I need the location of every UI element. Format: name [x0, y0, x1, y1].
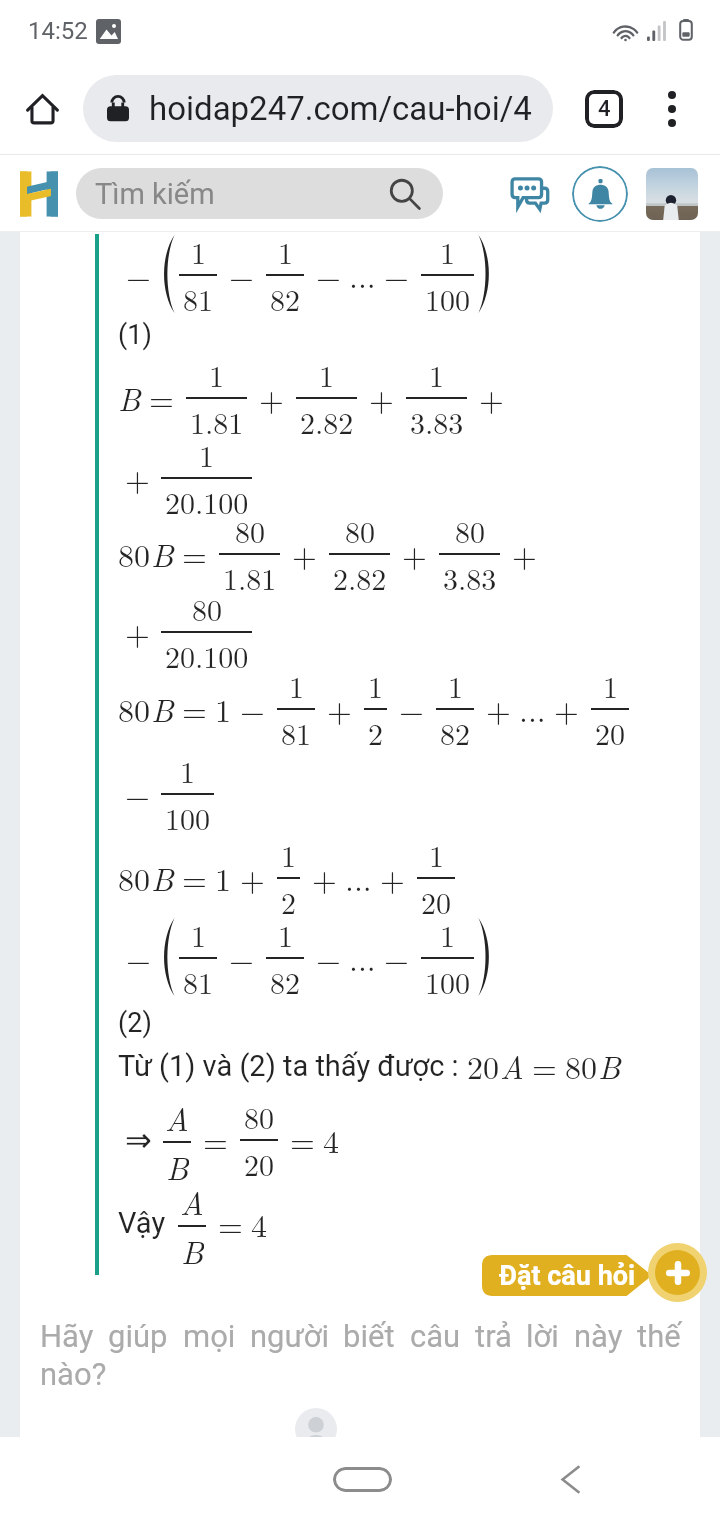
staticText: 2.82 [300, 400, 354, 441]
button[interactable]: Notifications [572, 166, 628, 222]
staticText: − [316, 252, 341, 297]
staticText: ... [349, 252, 376, 297]
staticText: 20.100 [165, 634, 249, 675]
staticText: A [500, 1043, 524, 1088]
staticText: 4 [323, 1117, 340, 1162]
staticText: 1 [429, 353, 444, 396]
staticText: thế [637, 1318, 681, 1354]
staticText: 80 [455, 509, 485, 552]
staticText: − [229, 252, 254, 297]
staticText: ... [349, 935, 376, 980]
staticText: + [402, 531, 427, 576]
staticText: 1 [281, 833, 296, 876]
button[interactable]: hoidap247.com/cau-hoi/4 [83, 75, 553, 142]
staticText: 80 [244, 1095, 274, 1138]
button[interactable]: Home [20, 171, 58, 217]
staticText: 1 [215, 686, 232, 731]
staticText: − [126, 252, 151, 297]
staticText: + [312, 855, 337, 900]
staticText: − [229, 935, 254, 980]
staticText: hoidap247.com/cau-hoi/4 [149, 89, 532, 128]
staticText: + [327, 686, 352, 731]
staticText: 20.100 [165, 480, 249, 521]
staticText: − [384, 252, 409, 297]
button[interactable]: Messages [506, 169, 556, 219]
staticText: 80 [118, 531, 151, 576]
staticText: Vậy [118, 1206, 166, 1240]
staticText: B [151, 855, 174, 900]
staticText: + [125, 609, 150, 654]
staticText: 80 [235, 509, 265, 552]
staticText: lời [526, 1318, 559, 1354]
staticText: B [166, 1144, 189, 1183]
staticText: 81 [183, 277, 213, 318]
staticText: − [126, 935, 151, 980]
button[interactable]: Home [14, 81, 70, 137]
staticText: 1 [448, 664, 463, 707]
staticText: 1 [215, 855, 232, 900]
staticText: này [574, 1318, 623, 1354]
staticText: 80 [118, 686, 151, 731]
staticText: 1 [429, 833, 444, 876]
staticText: trả [475, 1318, 512, 1354]
staticText: 1 [368, 664, 383, 707]
button[interactable]: Home [316, 1451, 408, 1507]
staticText: + [292, 531, 317, 576]
staticText: B [151, 531, 174, 576]
staticText: 80 [192, 587, 222, 630]
staticText: ... [345, 855, 372, 900]
staticText: + [125, 455, 150, 500]
staticText: + [554, 686, 579, 731]
staticText: người [250, 1318, 329, 1354]
staticText: − [125, 771, 150, 816]
staticText: − [240, 686, 265, 731]
staticText: = [290, 1117, 315, 1162]
staticText: 80 [565, 1043, 598, 1088]
staticText: = [182, 686, 207, 731]
staticText: A [180, 1179, 204, 1224]
staticText: = [182, 531, 207, 576]
staticText: + [380, 855, 405, 900]
staticText: + [512, 531, 537, 576]
staticText: B [181, 1228, 204, 1267]
staticText: B [118, 375, 141, 420]
staticText: nào? [40, 1356, 107, 1392]
button[interactable]: Tabs [574, 79, 634, 139]
button[interactable]: Đặt câu hỏi [482, 1255, 652, 1296]
staticText: 2.82 [333, 556, 387, 597]
staticText: 1 [440, 230, 455, 273]
button[interactable]: More options [644, 81, 700, 137]
staticText: 1 [289, 664, 304, 707]
staticText: − [399, 686, 424, 731]
staticText: 1 [199, 433, 214, 476]
staticText: B [598, 1043, 621, 1088]
button[interactable]: Profile [646, 168, 698, 220]
staticText: A [165, 1095, 189, 1140]
staticText: 82 [270, 277, 300, 318]
staticText: = [218, 1201, 243, 1246]
button[interactable]: Tìm kiếm [76, 168, 443, 219]
staticText: ⇒ [125, 1121, 152, 1158]
staticText: Hãy [40, 1318, 94, 1354]
staticText: 20 [244, 1142, 274, 1183]
staticText: 20 [421, 880, 451, 921]
staticText: 1 [278, 230, 293, 273]
staticText: 20 [595, 711, 625, 752]
staticText: câu [410, 1318, 461, 1354]
staticText: 1 [603, 664, 618, 707]
staticText: = [532, 1043, 557, 1088]
staticText: 4 [251, 1201, 268, 1246]
staticText: 80 [118, 855, 151, 900]
staticText: = [182, 855, 207, 900]
staticText: 2 [368, 711, 383, 752]
button[interactable]: Back [542, 1451, 600, 1507]
staticText: 4 [598, 96, 611, 122]
staticText: − [316, 935, 341, 980]
staticText: 82 [440, 711, 470, 752]
staticText: Tìm kiếm [95, 177, 215, 211]
button[interactable]: Ask a question [648, 1243, 707, 1302]
staticText: 100 [425, 960, 470, 1001]
staticText: 1 [278, 913, 293, 956]
staticText: + [479, 375, 504, 420]
staticText: 3.83 [410, 400, 464, 441]
